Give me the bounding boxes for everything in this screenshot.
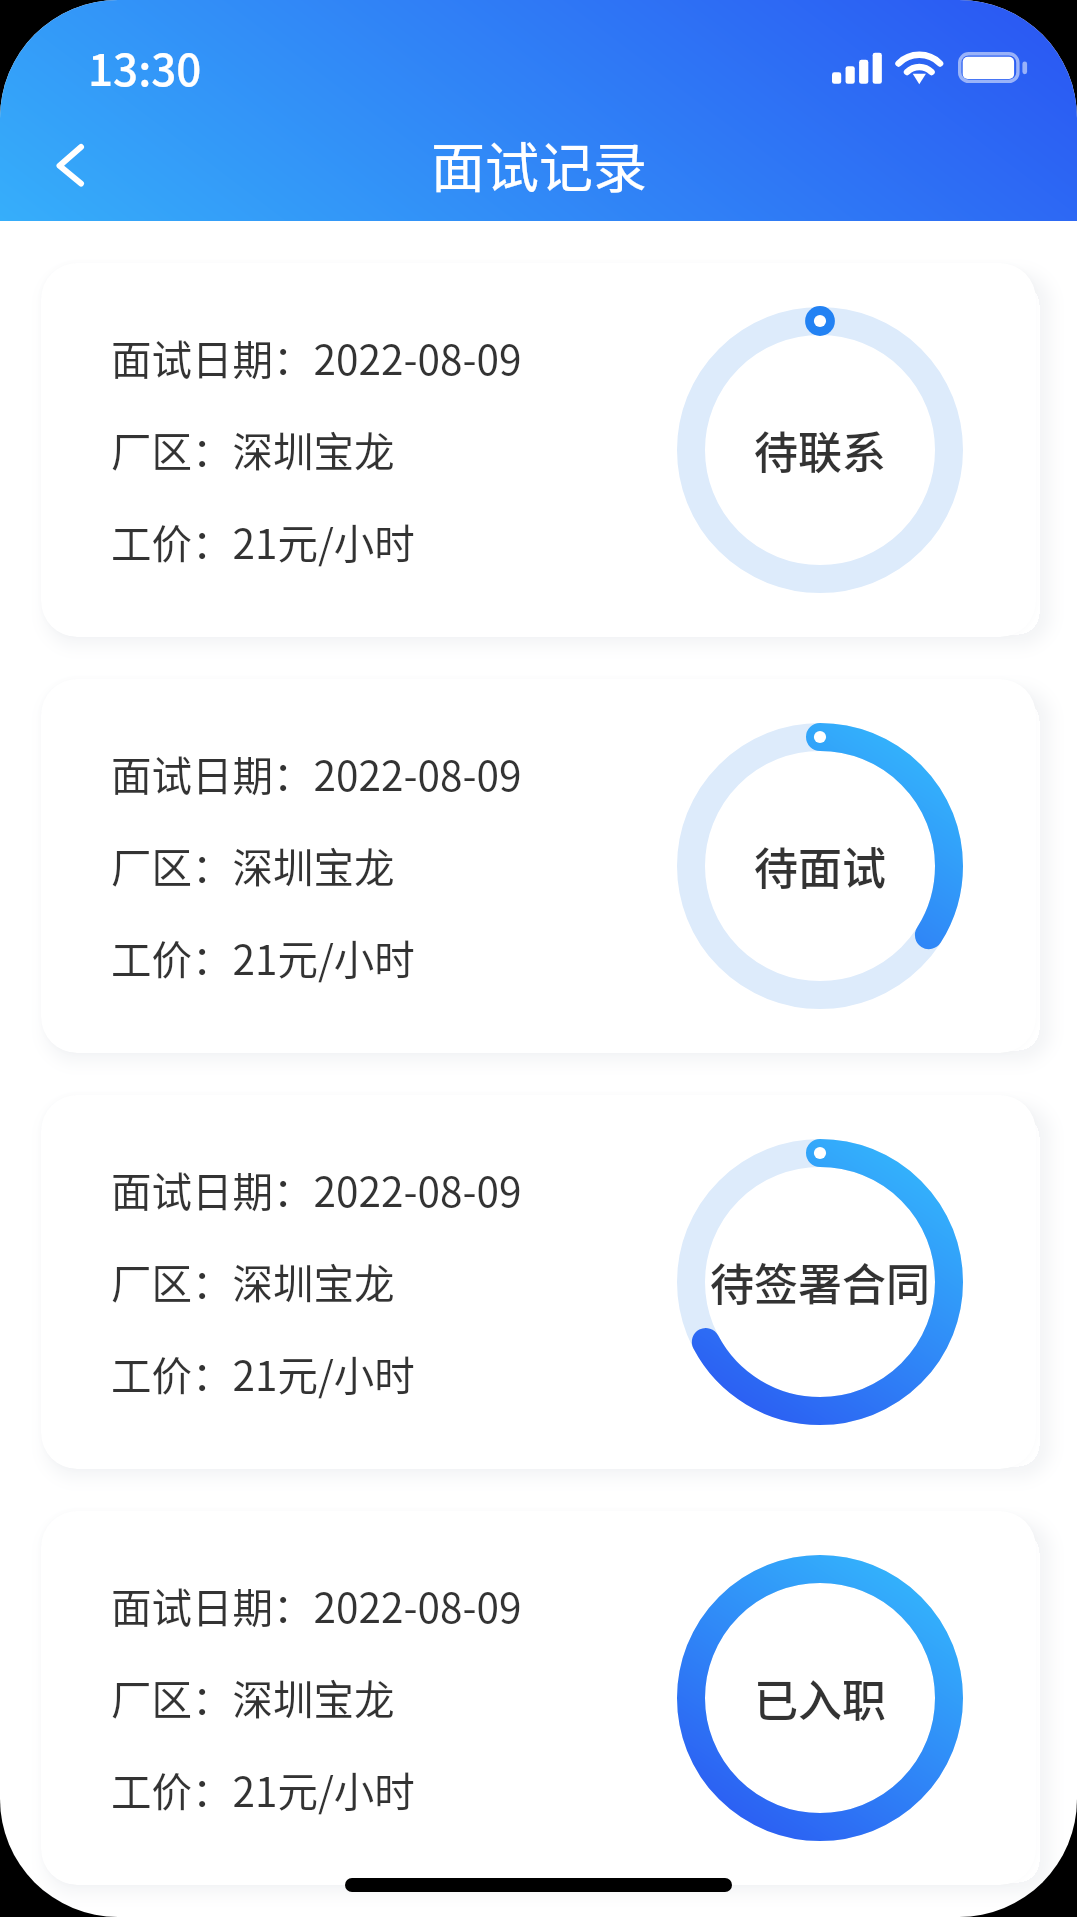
staticText: 面试日期：2022-08-09 — [111, 328, 522, 387]
staticText: 厂区：深圳宝龙 — [111, 1252, 395, 1311]
staticText: 工价：21元/小时 — [111, 1344, 415, 1403]
staticText: 面试日期：2022-08-09 — [111, 1576, 522, 1635]
staticText: 工价：21元/小时 — [111, 1760, 415, 1819]
staticText: 厂区：深圳宝龙 — [111, 420, 395, 479]
button[interactable]: 面试日期：2022-08-09 — [41, 263, 1036, 637]
staticText: 厂区：深圳宝龙 — [111, 1668, 395, 1727]
button[interactable]: Back — [20, 122, 116, 208]
button[interactable]: 面试日期：2022-08-09 — [41, 679, 1036, 1053]
staticText: 已入职 — [754, 1666, 886, 1730]
staticText: 面试日期：2022-08-09 — [111, 744, 522, 803]
button[interactable]: 面试日期：2022-08-09 — [41, 1511, 1036, 1885]
staticText: 13:30 — [88, 35, 202, 99]
staticText: 待面试 — [754, 834, 886, 898]
staticText: 厂区：深圳宝龙 — [111, 836, 395, 895]
staticText: 工价：21元/小时 — [111, 928, 415, 987]
staticText: 待签署合同 — [710, 1250, 930, 1314]
staticText: 面试记录 — [431, 125, 647, 203]
staticText: 面试日期：2022-08-09 — [111, 1160, 522, 1219]
staticText: 待联系 — [754, 418, 886, 482]
button[interactable]: 面试日期：2022-08-09 — [41, 1095, 1036, 1469]
staticText: 工价：21元/小时 — [111, 512, 415, 571]
